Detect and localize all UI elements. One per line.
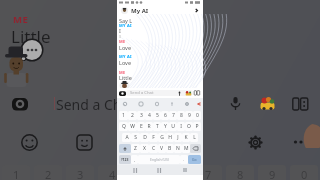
button[interactable]: Stickers (73, 131, 95, 153)
button[interactable]: 1 (119, 111, 128, 120)
button[interactable]: Camera (119, 90, 126, 97)
button[interactable]: U (169, 122, 177, 131)
staticText: N (176, 145, 180, 152)
button[interactable]: H (166, 133, 174, 142)
button[interactable]: N (174, 144, 182, 153)
button[interactable]: A (122, 133, 131, 142)
button[interactable]: O (185, 122, 193, 131)
button[interactable]: 0 (290, 165, 318, 180)
button[interactable]: Open camera (9, 93, 31, 115)
button[interactable]: 0 (193, 111, 201, 120)
button[interactable]: 3 (137, 111, 145, 120)
staticText: Z (134, 145, 137, 152)
button[interactable]: J (174, 133, 182, 142)
button[interactable]: , (131, 155, 138, 164)
button[interactable]: I (177, 122, 185, 131)
button[interactable]: P (193, 122, 201, 131)
staticText: 8 (237, 167, 244, 180)
staticText: MY AI (119, 23, 132, 28)
button[interactable]: T (153, 122, 161, 131)
staticText: 7 (172, 112, 175, 119)
button[interactable]: Voice input (164, 98, 179, 110)
button[interactable]: Back (130, 165, 142, 175)
staticText: Little (119, 74, 132, 81)
button[interactable]: V (158, 144, 166, 153)
button[interactable]: Voice note (176, 90, 183, 97)
button[interactable]: Cards (193, 89, 201, 97)
staticText: Little (11, 25, 51, 48)
button[interactable]: Settings (244, 131, 266, 153)
button[interactable]: X (140, 144, 149, 153)
button[interactable]: ?123 (119, 155, 131, 164)
button[interactable]: 6 (162, 165, 190, 180)
staticText: O (187, 123, 191, 130)
button[interactable]: F (149, 133, 158, 142)
staticText: 1 (13, 167, 20, 180)
button[interactable]: More options (290, 131, 312, 153)
button[interactable]: English (US) (138, 155, 180, 164)
button[interactable]: 4 (98, 165, 126, 180)
staticText: Send a Chat (56, 95, 135, 114)
button[interactable]: Cards (289, 93, 312, 116)
button[interactable]: Bitmoji sticker (256, 92, 280, 116)
button[interactable]: 2 (34, 165, 62, 180)
button[interactable]: 3 (66, 165, 94, 180)
button[interactable]: . (180, 155, 188, 164)
button[interactable]: Themes (117, 98, 133, 110)
button[interactable]: G (158, 133, 166, 142)
button[interactable]: My AI (117, 5, 203, 16)
staticText: 2 (45, 167, 52, 180)
staticText: X (143, 145, 146, 152)
button[interactable]: Backspace (190, 144, 201, 153)
staticText: A (125, 134, 129, 141)
staticText: J (177, 134, 179, 141)
button[interactable]: Z (131, 144, 140, 153)
staticText: Send a Chat (130, 90, 154, 96)
button[interactable]: Settings (179, 98, 194, 110)
button[interactable]: 1 (2, 165, 30, 180)
button[interactable]: 5 (153, 111, 161, 120)
button[interactable]: Bitmoji sticker (184, 89, 192, 97)
button[interactable]: 9 (258, 165, 286, 180)
button[interactable]: Voice note (225, 93, 246, 114)
staticText: , (134, 157, 136, 162)
button[interactable]: K (182, 133, 190, 142)
staticText: MY AI (119, 54, 132, 59)
button[interactable]: Y (161, 122, 169, 131)
staticText: K (184, 134, 188, 141)
button[interactable]: C (149, 144, 158, 153)
button[interactable]: Shift (119, 144, 131, 153)
button[interactable]: Expand toolbar (194, 98, 203, 110)
staticText: ?123 (121, 157, 129, 162)
staticText: M (184, 145, 189, 152)
button[interactable]: Emoji (18, 131, 40, 153)
button[interactable]: Q (119, 122, 128, 131)
staticText: S (134, 134, 137, 141)
button[interactable]: 7 (194, 165, 222, 180)
button[interactable]: 6 (161, 111, 169, 120)
button[interactable]: W (128, 122, 137, 131)
button[interactable]: M (182, 144, 190, 153)
button[interactable]: L (190, 133, 198, 142)
button[interactable]: S (131, 133, 140, 142)
button[interactable]: Home (154, 165, 166, 175)
button[interactable]: D (140, 133, 149, 142)
button[interactable]: B (166, 144, 174, 153)
button[interactable]: R (145, 122, 153, 131)
staticText: 3 (140, 112, 143, 119)
button[interactable]: 8 (177, 111, 185, 120)
button[interactable]: Recents (179, 165, 191, 175)
button[interactable]: E (137, 122, 145, 131)
button[interactable]: 4 (145, 111, 153, 120)
button[interactable]: 7 (169, 111, 177, 120)
staticText: I (119, 27, 121, 34)
button[interactable]: 9 (185, 111, 193, 120)
button[interactable]: 5 (130, 165, 158, 180)
button[interactable]: GIF (133, 98, 149, 110)
button[interactable]: Clipboard (149, 98, 164, 110)
button[interactable]: Go (188, 155, 201, 164)
button[interactable]: 2 (128, 111, 137, 120)
staticText: Say L (119, 17, 133, 24)
staticText: C (152, 145, 156, 152)
button[interactable]: 8 (226, 165, 254, 180)
